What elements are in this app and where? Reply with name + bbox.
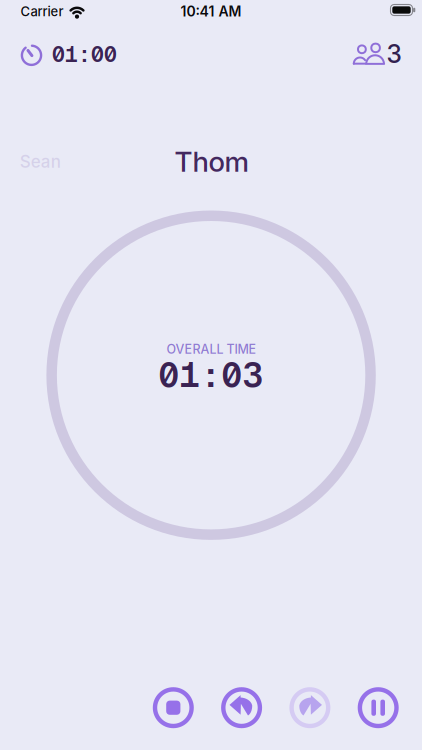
staticText: OVERALL TIME (166, 342, 256, 357)
staticText: 10:41 AM (180, 3, 241, 20)
button[interactable]: Stop (153, 687, 194, 728)
button[interactable]: Timer duration (21, 42, 117, 68)
button[interactable]: Pause (358, 687, 399, 728)
button[interactable]: Previous speaker (221, 687, 262, 728)
button[interactable]: Thom (142, 141, 282, 181)
staticText: 01:03 (158, 352, 263, 397)
staticText: 3 (387, 39, 402, 69)
button[interactable]: Next speaker (289, 687, 330, 728)
button[interactable]: Participants (352, 41, 402, 66)
staticText: Thom (174, 145, 249, 178)
staticText: Sean (20, 151, 61, 172)
staticText: 01:00 (52, 40, 117, 69)
staticText: Carrier (20, 4, 63, 19)
button[interactable]: Sean (0, 148, 80, 174)
